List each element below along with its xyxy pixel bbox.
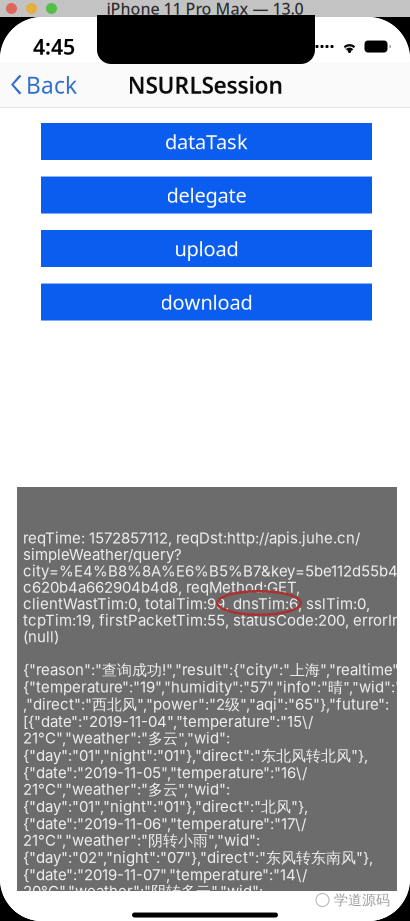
staticText: NSURLSession [127,70,282,100]
staticText: Back [26,70,77,100]
staticText: [{"date":"2019-11-04","temperature":"15\… [23,713,313,731]
button[interactable]: Zoom window [46,3,57,14]
staticText: 20°C","weather":"阴转多云","wid": [23,882,263,901]
staticText: clientWastTim:0, totalTim:99, dnsTim:6, … [23,595,370,613]
staticText: c620b4a662904b4d8, reqMethod:GET, [23,578,300,596]
staticText: tcpTim:19, firstPacketTim:55, statusCode… [23,611,410,629]
button[interactable]: delegate [41,176,372,213]
staticText: ,"direct":"西北风","power":"2级","aqi":"65"}… [23,695,389,714]
button[interactable]: Close window [6,3,17,14]
button[interactable]: Back [0,63,85,107]
staticText: {"day":"01","night":"01"},"direct":"北风"}… [23,797,308,816]
staticText: upload [174,235,238,262]
staticText: {"day":"01","night":"01"},"direct":"东北风转… [23,746,368,765]
staticText: delegate [166,182,246,208]
button[interactable]: dataTask [41,123,372,160]
button[interactable]: upload [41,230,372,267]
staticText: {"reason":"查询成功!","result":{"city":"上海",… [23,661,403,680]
staticText: 学道源码 [334,891,390,909]
staticText: 21°C","weather":"阴转小雨","wid": [23,831,260,850]
staticText: {"date":"2019-11-07","temperature":"14\/ [23,866,307,884]
staticText: city=%E4%B8%8A%E6%B5%B7&key=5be112d55b4f… [23,562,410,580]
staticText: 21°C","weather":"多云","wid": [23,780,230,799]
button[interactable]: download [41,283,372,320]
staticText: {"date":"2019-11-06","temperature":"17\/ [23,815,306,833]
staticText: {"day":"02","night":"07"},"direct":"东风转东… [23,849,373,867]
staticText: iPhone 11 Pro Max — 13.0 [106,0,303,19]
staticText: 4:45 [33,32,75,61]
staticText: simpleWeather/query? [23,545,182,564]
staticText: reqTime: 1572857112, reqDst:http://apis.… [23,529,360,547]
staticText: {"date":"2019-11-05","temperature":"16\/ [23,764,307,782]
button[interactable]: Minimise window [26,3,37,14]
staticText: download [160,289,252,315]
staticText: 21°C","weather":"多云","wid": [23,729,230,748]
staticText: {"temperature":"19","humidity":"57","inf… [23,678,410,697]
staticText: dataTask [165,128,248,155]
staticText: (null) [23,628,59,646]
